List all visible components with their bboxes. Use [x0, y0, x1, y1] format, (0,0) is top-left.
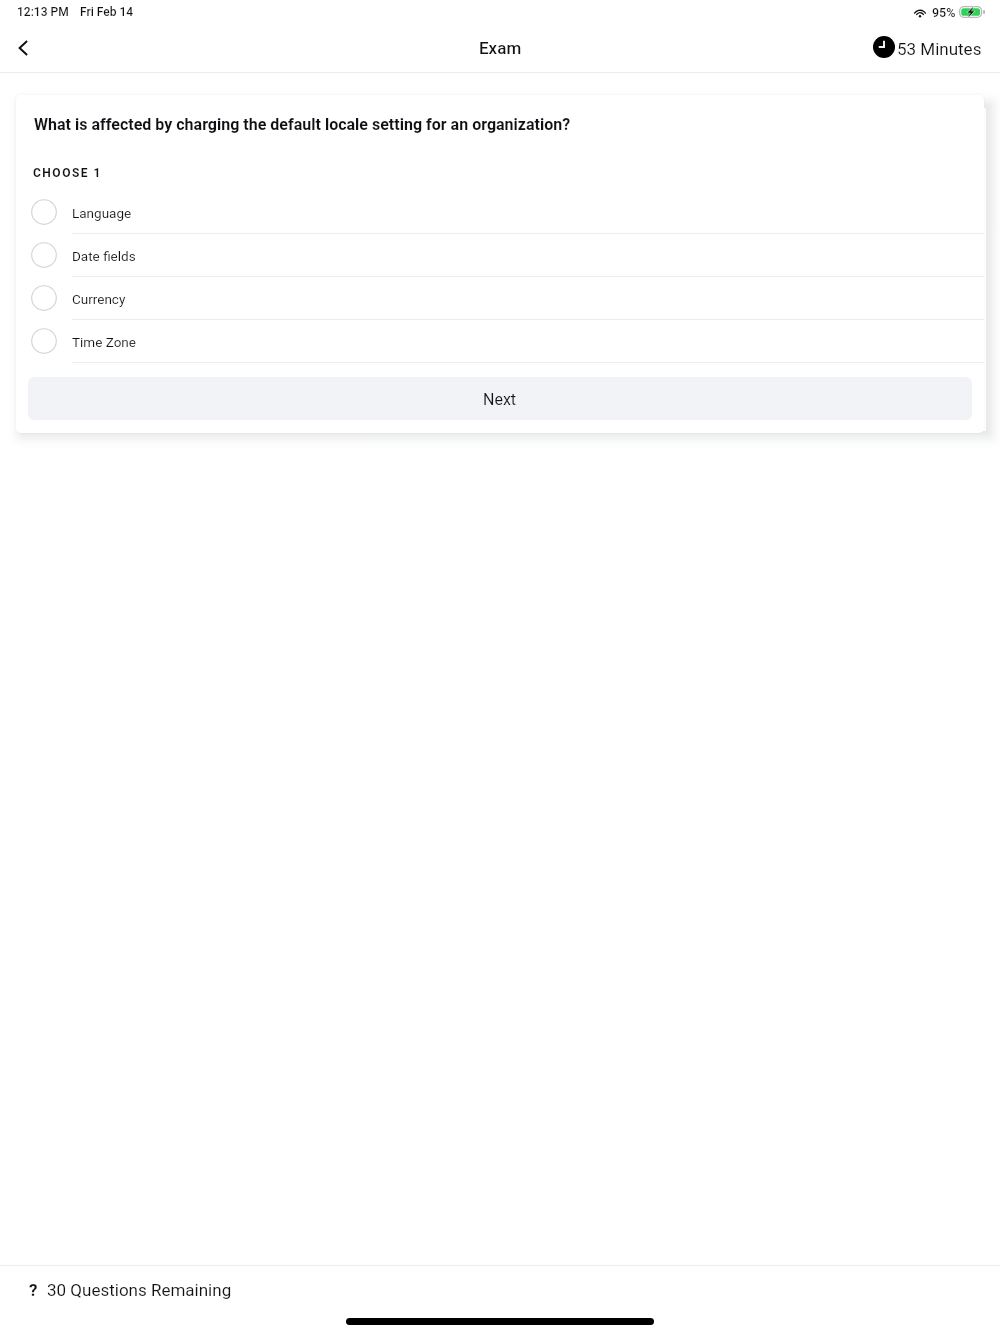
staticText: 53 Minutes [897, 39, 982, 59]
staticText: Exam [479, 38, 522, 58]
staticText: Currency [72, 291, 126, 307]
button[interactable]: Date fields [16, 234, 984, 277]
staticText: 30 Questions Remaining [47, 1280, 232, 1300]
staticText: CHOOSE 1 [33, 166, 102, 180]
button[interactable]: Currency [16, 277, 984, 320]
staticText: Fri Feb 14 [80, 5, 134, 19]
button[interactable]: Back [1, 25, 47, 71]
button[interactable]: Language [16, 191, 984, 234]
staticText: Next [483, 390, 517, 409]
staticText: Language [72, 205, 132, 221]
staticText: ? [29, 1280, 38, 1300]
staticText: What is affected by charging the default… [34, 115, 571, 134]
staticText: Date fields [72, 248, 136, 264]
staticText: 95% [932, 5, 956, 20]
button[interactable]: Time Zone [16, 320, 984, 363]
button[interactable]: Next [28, 377, 972, 420]
staticText: Time Zone [72, 334, 136, 350]
button[interactable]: ? [29, 1278, 232, 1302]
staticText: 12:13 PM [17, 5, 69, 19]
